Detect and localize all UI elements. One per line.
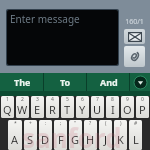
- button[interactable]: Attach: [124, 46, 145, 67]
- button[interactable]: More suggestions: [130, 73, 150, 91]
- staticText: #: [134, 120, 138, 127]
- button[interactable]: ?: [84, 120, 97, 150]
- staticText: +: [29, 120, 32, 127]
- staticText: sanford: [22, 120, 122, 150]
- staticText: 3: [36, 96, 39, 103]
- button[interactable]: 9: [121, 96, 134, 118]
- staticText: K: [117, 132, 124, 147]
- button[interactable]: ): [114, 120, 127, 150]
- button[interactable]: 8: [106, 96, 119, 118]
- staticText: R: [49, 102, 56, 117]
- staticText: 4: [51, 96, 54, 103]
- staticText: ;: [60, 120, 62, 127]
- button[interactable]: :: [39, 120, 52, 150]
- staticText: Y: [79, 102, 86, 117]
- staticText: (: [105, 120, 107, 127]
- button[interactable]: #: [129, 120, 142, 150]
- staticText: F: [58, 132, 64, 147]
- button[interactable]: 0: [136, 96, 149, 118]
- staticText: ): [120, 120, 122, 127]
- staticText: I: [111, 102, 115, 117]
- staticText: O: [123, 102, 132, 117]
- button[interactable]: To: [44, 73, 87, 91]
- staticText: 9: [126, 96, 129, 103]
- staticText: 8: [111, 96, 114, 103]
- staticText: S: [27, 132, 34, 147]
- staticText: 1: [6, 96, 9, 103]
- staticText: 5: [66, 96, 69, 103]
- staticText: G: [71, 132, 80, 147]
- staticText: H: [86, 132, 95, 147]
- staticText: 160/1: [125, 17, 144, 27]
- button[interactable]: +: [24, 120, 37, 150]
- staticText: L: [133, 132, 139, 147]
- button[interactable]: 3: [31, 96, 44, 118]
- button[interactable]: Enter message: [7, 10, 118, 65]
- button[interactable]: *: [8, 120, 22, 150]
- staticText: The: [14, 76, 31, 88]
- staticText: ": [74, 120, 77, 127]
- button[interactable]: ": [69, 120, 82, 150]
- staticText: 7: [96, 96, 99, 103]
- staticText: Q: [3, 102, 12, 117]
- staticText: *: [14, 120, 17, 127]
- button[interactable]: 7: [91, 96, 104, 118]
- button[interactable]: 6: [76, 96, 89, 118]
- staticText: :: [45, 120, 47, 127]
- staticText: 0: [141, 96, 144, 103]
- staticText: ?: [89, 120, 92, 127]
- button[interactable]: ;: [54, 120, 67, 150]
- button[interactable]: 2: [16, 96, 29, 118]
- button[interactable]: 5: [61, 96, 74, 118]
- staticText: To: [60, 76, 71, 88]
- staticText: E: [34, 102, 41, 117]
- button[interactable]: 4: [46, 96, 59, 118]
- staticText: J: [104, 132, 108, 147]
- staticText: Enter message: [10, 12, 80, 26]
- button[interactable]: The: [0, 73, 44, 91]
- button[interactable]: (: [99, 120, 112, 150]
- staticText: And: [100, 76, 118, 88]
- button[interactable]: Send message: [124, 29, 145, 44]
- staticText: A: [11, 132, 19, 147]
- staticText: W: [17, 102, 28, 117]
- staticText: T: [64, 102, 71, 117]
- staticText: P: [139, 102, 146, 117]
- button[interactable]: 1: [1, 96, 14, 118]
- staticText: 6: [81, 96, 84, 103]
- staticText: 2: [21, 96, 24, 103]
- staticText: D: [41, 132, 50, 147]
- button[interactable]: And: [87, 73, 130, 91]
- staticText: U: [93, 102, 102, 117]
